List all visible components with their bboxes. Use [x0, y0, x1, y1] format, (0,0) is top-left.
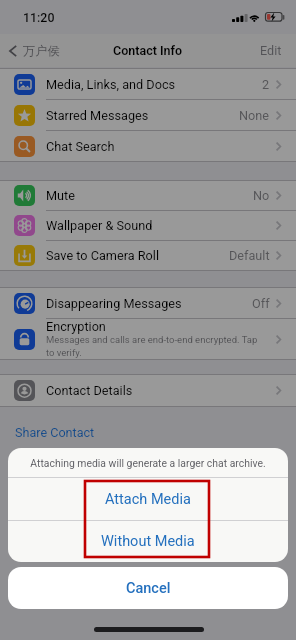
staticText: Starred Messages — [46, 108, 149, 123]
other: Chat Search — [14, 136, 35, 157]
other: Wallpaper and Sound — [14, 215, 35, 236]
other: Starred Messages — [14, 105, 35, 126]
other: Media, Links, and Docs — [14, 74, 35, 95]
button[interactable]: Encryption — [0, 319, 296, 359]
button[interactable]: Disappearing Messages — [0, 288, 296, 318]
other: Mute — [14, 185, 35, 206]
button[interactable]: Attach Media — [8, 478, 288, 520]
staticText: Attach Media — [105, 491, 191, 508]
staticText: Messages and calls are end-to-end encryp… — [46, 334, 258, 359]
staticText: No — [253, 188, 270, 203]
other: Save to Camera Roll — [14, 245, 35, 266]
staticText: Chat Search — [46, 139, 115, 154]
staticText: Attaching media will generate a larger c… — [30, 457, 266, 469]
button[interactable]: 万户侯 — [0, 39, 70, 62]
button[interactable]: Chat Search — [0, 131, 296, 161]
button[interactable]: Wallpaper and Sound — [0, 211, 296, 240]
staticText: None — [239, 108, 270, 123]
staticText: Media, Links, and Docs — [46, 77, 176, 92]
button[interactable]: Media, Links, and Docs — [0, 69, 296, 99]
button[interactable]: Share Contact — [0, 423, 105, 444]
staticText: Wallpaper & Sound — [46, 218, 153, 233]
button[interactable]: Contact Details — [0, 375, 296, 406]
staticText: Default — [229, 248, 270, 263]
other: Disappearing Messages — [14, 293, 35, 314]
staticText: Contact Details — [46, 383, 133, 398]
other: Contact Details — [14, 380, 35, 401]
staticText: Contact Info — [113, 43, 183, 58]
staticText: Save to Camera Roll — [46, 248, 160, 263]
staticText: Disappearing Messages — [46, 296, 182, 311]
button[interactable]: Edit — [250, 37, 296, 64]
staticText: Encryption — [46, 319, 106, 334]
other: Encryption — [14, 329, 35, 350]
button[interactable]: Mute — [0, 181, 296, 210]
staticText: Share Contact — [15, 425, 95, 440]
staticText: Off — [252, 296, 270, 311]
staticText: Without Media — [101, 533, 195, 550]
button[interactable]: Starred Messages — [0, 100, 296, 130]
staticText: 2 — [262, 77, 270, 92]
button[interactable]: Save to Camera Roll — [0, 241, 296, 270]
staticText: 万户侯 — [23, 43, 60, 58]
staticText: Cancel — [126, 580, 171, 597]
button[interactable]: Cancel — [8, 567, 288, 609]
button[interactable]: Without Media — [8, 521, 288, 562]
staticText: Mute — [46, 188, 75, 203]
staticText: 11:20 — [23, 10, 55, 25]
